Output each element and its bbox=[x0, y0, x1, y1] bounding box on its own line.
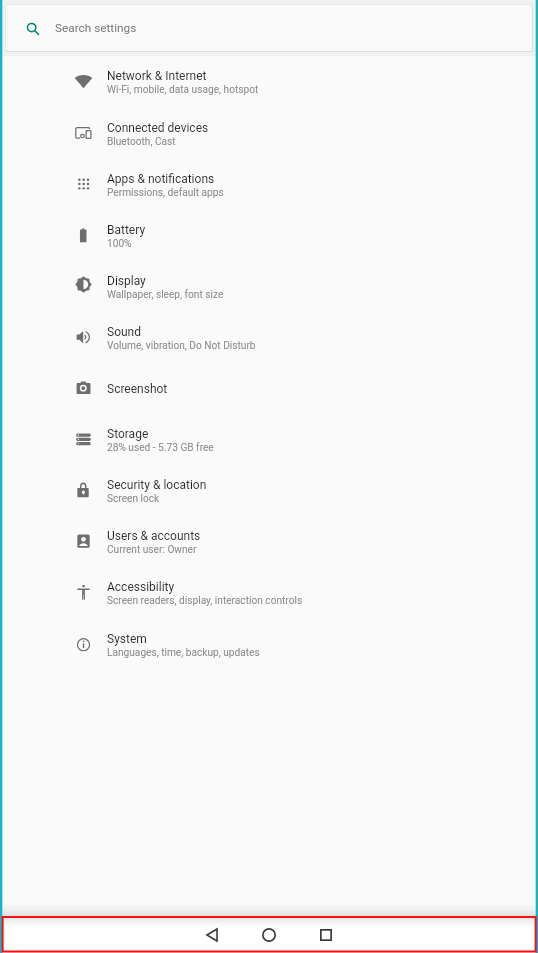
button[interactable]: Sound bbox=[0, 312, 538, 363]
button[interactable]: Apps & notifications bbox=[0, 159, 538, 210]
staticText: Current user: Owner bbox=[107, 544, 197, 556]
staticText: Wi-Fi, mobile, data usage, hotspot bbox=[107, 84, 259, 96]
button[interactable]: Recent apps bbox=[298, 917, 354, 952]
staticText: Network & Internet bbox=[107, 69, 207, 83]
staticText: Display bbox=[107, 274, 146, 288]
button[interactable]: Search settings bbox=[6, 5, 532, 51]
staticText: Bluetooth, Cast bbox=[107, 136, 176, 148]
staticText: Permissions, default apps bbox=[107, 187, 224, 199]
staticText: Screenshot bbox=[107, 382, 168, 396]
staticText: Wallpaper, sleep, font size bbox=[107, 289, 224, 301]
staticText: System bbox=[107, 632, 147, 646]
staticText: 28% used - 5.73 GB free bbox=[107, 442, 214, 454]
staticText: Storage bbox=[107, 427, 149, 441]
staticText: 100% bbox=[107, 238, 132, 250]
button[interactable]: Security & location bbox=[0, 465, 538, 516]
button[interactable]: Display bbox=[0, 261, 538, 312]
staticText: Accessibility bbox=[107, 580, 175, 594]
staticText: Battery bbox=[107, 223, 146, 237]
staticText: Languages, time, backup, updates bbox=[107, 647, 260, 659]
staticText: Connected devices bbox=[107, 121, 209, 135]
button[interactable]: Network & Internet bbox=[0, 56, 538, 107]
staticText: Security & location bbox=[107, 478, 207, 492]
button[interactable]: Storage bbox=[0, 414, 538, 465]
staticText: Apps & notifications bbox=[107, 172, 215, 186]
button[interactable]: Battery bbox=[0, 210, 538, 261]
staticText: Sound bbox=[107, 325, 141, 339]
button[interactable]: Home bbox=[241, 917, 297, 952]
button[interactable]: Screenshot bbox=[0, 363, 538, 414]
button[interactable]: Accessibility bbox=[0, 567, 538, 618]
button[interactable]: Users & accounts bbox=[0, 516, 538, 567]
staticText: Volume, vibration, Do Not Disturb bbox=[107, 340, 256, 352]
staticText: Users & accounts bbox=[107, 529, 201, 543]
staticText: Search settings bbox=[55, 21, 137, 35]
staticText: Screen readers, display, interaction con… bbox=[107, 595, 303, 607]
staticText: Screen lock bbox=[107, 493, 160, 505]
button[interactable]: Connected devices bbox=[0, 108, 538, 159]
button[interactable]: Back bbox=[184, 917, 240, 952]
button[interactable]: System bbox=[0, 619, 538, 670]
